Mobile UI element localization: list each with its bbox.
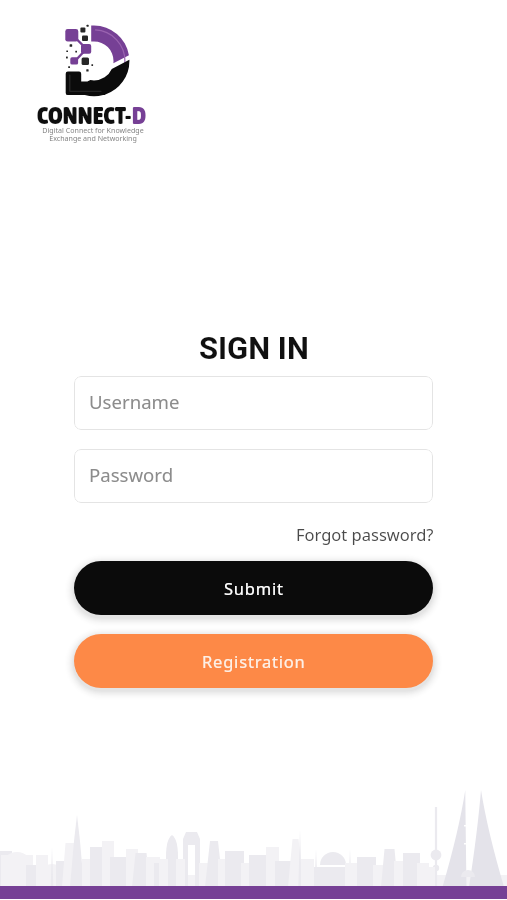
staticText: Submit [224,577,284,599]
button[interactable]: Submit [74,561,433,615]
staticText: Forgot password? [296,523,434,545]
staticText: D [132,101,147,130]
staticText: Password [89,462,174,487]
button[interactable]: Password [74,449,433,503]
staticText: Digital Connect for Knowledge Exchange a… [0,125,186,143]
button[interactable]: Username [74,376,433,430]
staticText: Registration [202,650,306,672]
button[interactable]: Registration [74,634,433,688]
staticText: CONNECT- [37,101,132,130]
staticText: Username [89,389,180,414]
staticText: SIGN IN [199,330,309,366]
button[interactable]: Forgot password? [294,521,436,547]
